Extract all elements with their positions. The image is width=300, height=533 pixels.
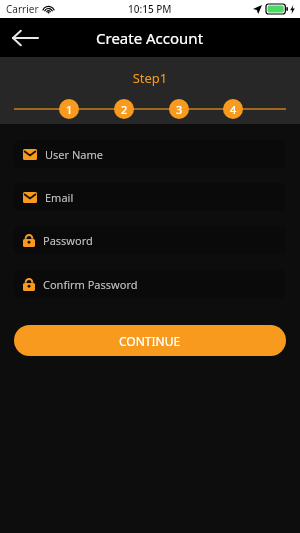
staticText: Password <box>43 233 93 248</box>
button[interactable]: Email <box>14 183 286 211</box>
button[interactable]: Back <box>8 21 42 55</box>
staticText: Step1 <box>0 69 300 87</box>
button[interactable]: 4 <box>223 99 243 119</box>
button[interactable]: 1 <box>59 99 79 119</box>
staticText: CONTINUE <box>119 333 181 349</box>
staticText: 4 <box>230 102 237 117</box>
button[interactable]: Confirm Password <box>14 270 286 298</box>
staticText: 1 <box>66 102 73 117</box>
staticText: 2 <box>121 102 128 117</box>
staticText: User Name <box>45 147 103 162</box>
button[interactable]: Password <box>14 226 286 254</box>
button[interactable]: CONTINUE <box>14 325 286 356</box>
button[interactable]: 3 <box>169 99 189 119</box>
staticText: Email <box>45 190 74 205</box>
staticText: Create Account <box>96 28 204 48</box>
staticText: 3 <box>176 102 183 117</box>
staticText: 10:15 PM <box>128 2 172 16</box>
staticText: Carrier <box>6 2 39 16</box>
staticText: Confirm Password <box>43 277 138 292</box>
button[interactable]: 2 <box>114 99 134 119</box>
button[interactable]: User Name <box>14 140 286 168</box>
